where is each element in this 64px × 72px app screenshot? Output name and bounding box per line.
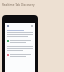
staticText: Realtime Tab Discovery xyxy=(2,3,35,7)
